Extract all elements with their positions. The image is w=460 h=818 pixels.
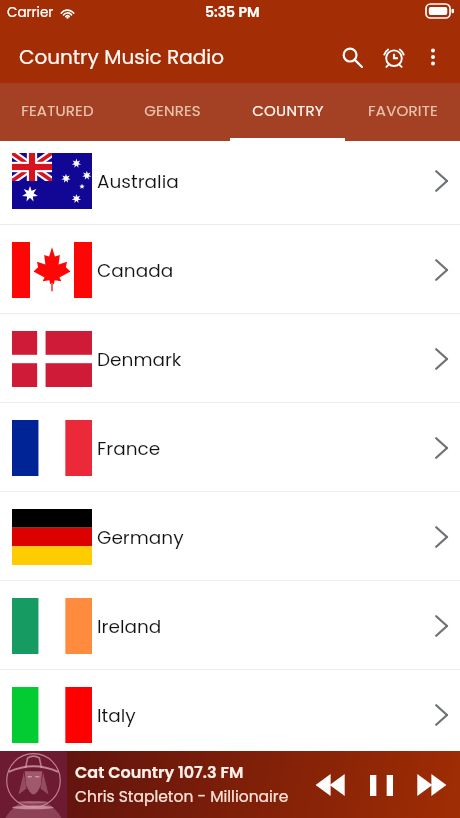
staticText: Italy: [97, 703, 136, 729]
staticText: 5:35 PM: [205, 2, 260, 22]
button[interactable]: FEATURED: [0, 83, 115, 141]
staticText: Carrier: [7, 3, 54, 22]
button[interactable]: Search: [331, 36, 373, 78]
staticText: Australia: [97, 169, 179, 195]
button[interactable]: COUNTRY: [230, 83, 345, 141]
staticText: COUNTRY: [252, 100, 324, 121]
staticText: Germany: [97, 525, 184, 551]
staticText: GENRES: [144, 100, 201, 121]
staticText: Chris Stapleton - Millionaire: [75, 786, 289, 808]
button[interactable]: FAVORITE: [345, 83, 460, 141]
button[interactable]: Italy: [0, 670, 460, 751]
button[interactable]: Australia: [0, 141, 460, 225]
button[interactable]: Denmark: [0, 314, 460, 403]
button[interactable]: Germany: [0, 492, 460, 581]
staticText: FEATURED: [21, 100, 94, 121]
staticText: Country Music Radio: [19, 43, 224, 71]
button[interactable]: Next track: [406, 759, 458, 811]
button[interactable]: Previous track: [304, 759, 356, 811]
button[interactable]: Canada: [0, 225, 460, 314]
button[interactable]: More options: [415, 39, 451, 75]
staticText: FAVORITE: [368, 100, 438, 121]
button[interactable]: Pause: [356, 760, 406, 810]
button[interactable]: Ireland: [0, 581, 460, 670]
staticText: France: [97, 436, 161, 462]
button[interactable]: GENRES: [115, 83, 230, 141]
staticText: Denmark: [97, 347, 182, 373]
staticText: Canada: [97, 258, 174, 284]
staticText: Ireland: [97, 614, 162, 640]
staticText: Cat Country 107.3 FM: [75, 761, 244, 783]
button[interactable]: Alarm: [373, 36, 415, 78]
button[interactable]: France: [0, 403, 460, 492]
